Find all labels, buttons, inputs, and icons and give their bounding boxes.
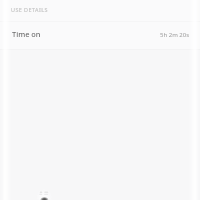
button[interactable]: More details bbox=[36, 188, 56, 200]
staticText: USE DETAILS bbox=[11, 6, 48, 13]
button[interactable]: Time on bbox=[0, 22, 200, 49]
staticText: Time on bbox=[12, 29, 41, 39]
staticText: 5h 2m 20s bbox=[160, 31, 190, 39]
